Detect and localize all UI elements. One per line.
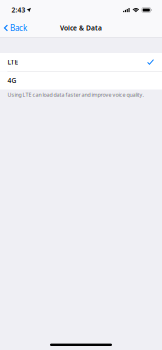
staticText: LTE [7,58,18,66]
staticText: Voice & Data [60,24,102,32]
button[interactable]: LTE [0,53,162,71]
staticText: 4G [7,76,16,85]
staticText: 2:43 [11,6,25,14]
staticText: Back [10,23,27,33]
button[interactable]: Back [0,18,33,36]
button[interactable]: 4G [0,71,162,89]
staticText: Using LTE can load data faster and impro… [7,91,143,98]
